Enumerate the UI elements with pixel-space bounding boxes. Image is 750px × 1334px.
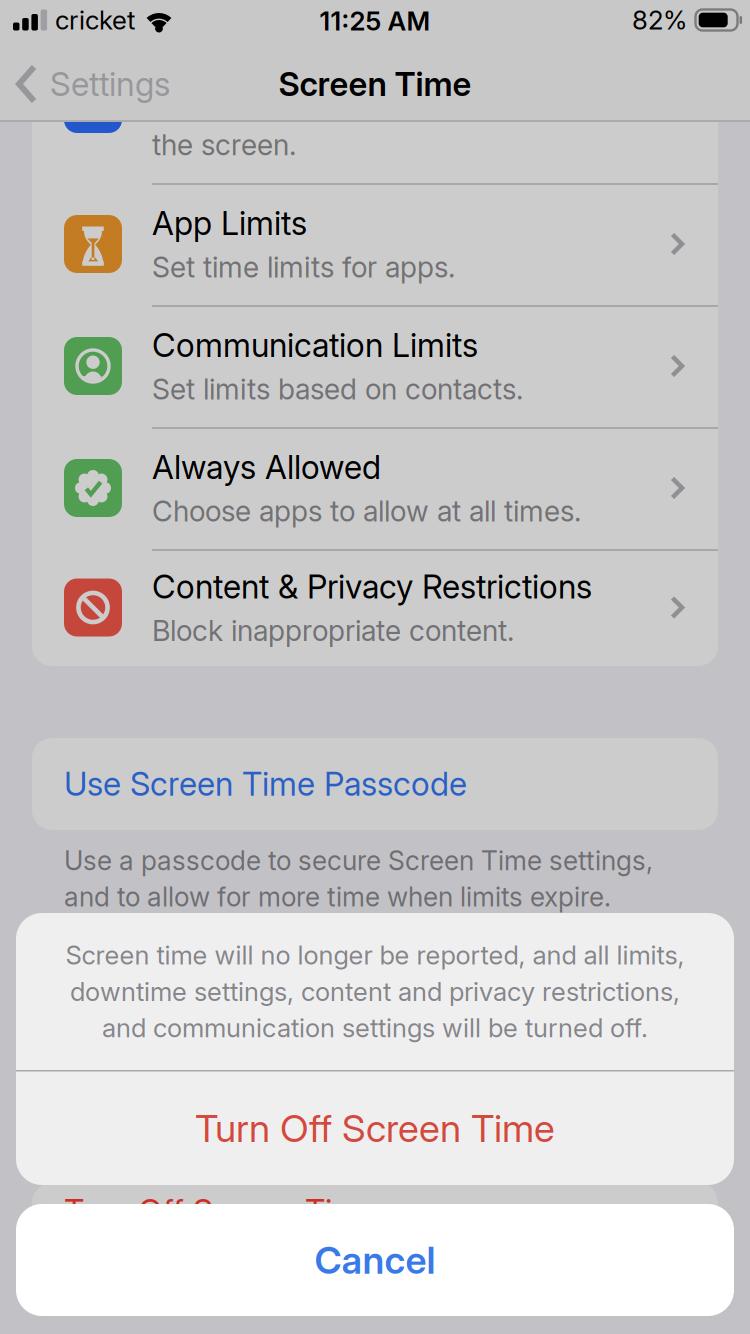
- staticText: Use Screen Time Passcode: [64, 765, 467, 803]
- staticText: Screen Time: [278, 64, 471, 103]
- button[interactable]: Use Screen Time Passcode: [32, 738, 718, 830]
- staticText: downtime settings, content and privacy r…: [70, 976, 680, 1007]
- staticText: App Limits: [152, 204, 307, 242]
- staticText: Set limits based on contacts.: [152, 372, 523, 406]
- staticText: Turn Off Screen Time: [64, 1192, 378, 1230]
- button[interactable]: Turn Off Screen Time: [16, 1071, 734, 1185]
- staticText: and to allow for more time when limits e…: [64, 881, 611, 913]
- staticText: Choose apps to allow at all times.: [152, 494, 581, 528]
- button[interactable]: Cancel: [16, 1204, 734, 1316]
- button[interactable]: Always Allowed: [32, 427, 718, 549]
- button[interactable]: Communication Limits: [32, 305, 718, 427]
- button[interactable]: Back: [0, 64, 170, 104]
- staticText: 82%: [632, 5, 687, 35]
- staticText: Always Allowed: [152, 448, 381, 486]
- staticText: and communication settings will be turne…: [102, 1013, 648, 1043]
- staticText: Settings: [50, 64, 170, 103]
- staticText: Content & Privacy Restrictions: [152, 567, 592, 606]
- staticText: cricket: [55, 5, 135, 35]
- button[interactable]: Content & Privacy Restrictions: [32, 549, 718, 666]
- staticText: Set time limits for apps.: [152, 250, 455, 284]
- staticText: 11:25 AM: [319, 6, 430, 36]
- button[interactable]: App Limits: [32, 183, 718, 305]
- staticText: Screen time will no longer be reported, …: [65, 940, 684, 970]
- staticText: Turn Off Screen Time: [195, 1106, 555, 1151]
- staticText: Use a passcode to secure Screen Time set…: [64, 845, 653, 876]
- staticText: Communication Limits: [152, 326, 478, 364]
- staticText: Cancel: [314, 1238, 435, 1282]
- staticText: the screen.: [152, 128, 296, 162]
- staticText: Block inappropriate content.: [152, 614, 514, 647]
